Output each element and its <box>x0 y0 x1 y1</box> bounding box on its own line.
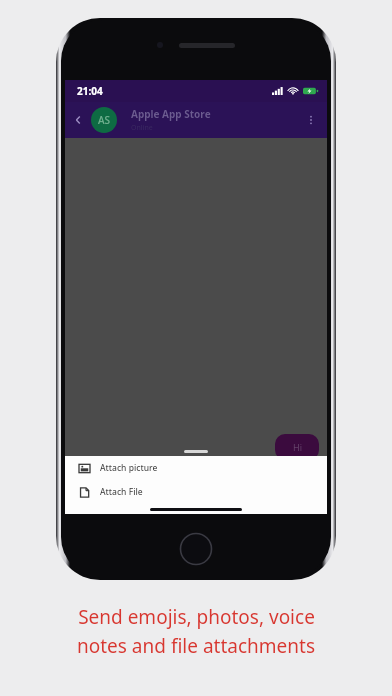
button[interactable]: Back <box>65 107 91 133</box>
button[interactable]: AS <box>91 107 117 133</box>
staticText: Attach picture <box>100 462 158 474</box>
button[interactable]: Attach File <box>65 480 327 504</box>
staticText: notes and file attachments <box>77 633 315 659</box>
staticText: Apple App Store <box>131 107 211 121</box>
staticText: 21:04 <box>77 84 103 98</box>
staticText: Online <box>131 123 153 133</box>
button[interactable]: More options <box>299 108 323 132</box>
staticText: Attach File <box>100 486 143 498</box>
staticText: AS <box>98 113 111 127</box>
staticText: Send emojis, photos, voice <box>78 604 315 630</box>
button[interactable]: Attach picture <box>65 456 327 480</box>
staticText: Hi <box>293 441 302 453</box>
